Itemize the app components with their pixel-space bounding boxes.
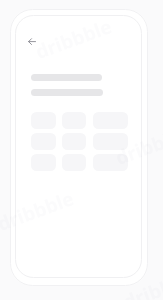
staticText: dribbble: [0, 185, 78, 237]
staticText: dribbble: [32, 13, 116, 65]
staticText: dribbble: [112, 119, 163, 171]
staticText: dribbble: [120, 263, 163, 300]
button[interactable]: Back: [22, 31, 43, 52]
